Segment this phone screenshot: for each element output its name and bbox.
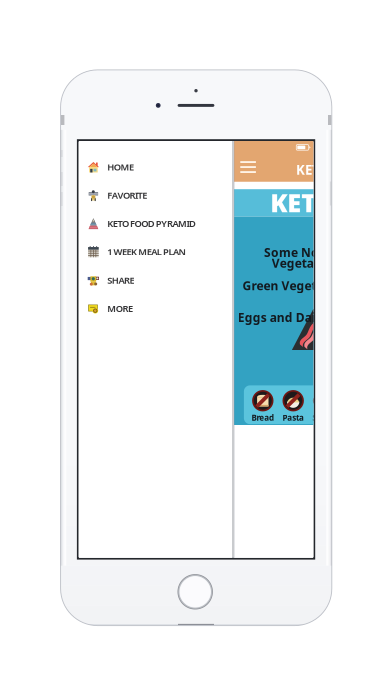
- button[interactable]: FAVORITE: [79, 181, 232, 209]
- staticText: HOME: [107, 161, 134, 173]
- staticText: FAVORITE: [107, 189, 147, 201]
- staticText: Vegetables: [272, 255, 339, 271]
- staticText: KETO FOOD PYRAMID: [296, 161, 392, 178]
- staticText: Some Non Carb: [264, 244, 358, 260]
- button[interactable]: SHARE: [79, 266, 232, 294]
- button[interactable]: HOME: [79, 153, 232, 181]
- staticText: KETO FOOD PYRAMID: [107, 217, 196, 230]
- button[interactable]: 1 WEEK MEAL PLAN: [79, 238, 232, 266]
- staticText: Bread: [252, 412, 274, 423]
- staticText: SHARE: [107, 274, 134, 286]
- staticText: MORE: [107, 302, 133, 315]
- button[interactable]: Open menu: [235, 156, 261, 178]
- staticText: Sugar: [312, 412, 335, 423]
- staticText: Pasta: [282, 412, 304, 423]
- staticText: Eggs and Dairy: [238, 309, 328, 325]
- staticText: 1 WEEK MEAL PLAN: [107, 246, 185, 258]
- staticText: KETO FOOD PYRAMID: [270, 186, 392, 219]
- button[interactable]: KETO FOOD PYRAMID: [79, 209, 232, 238]
- staticText: Green Vegetables: [243, 278, 349, 293]
- button[interactable]: MORE: [79, 294, 232, 322]
